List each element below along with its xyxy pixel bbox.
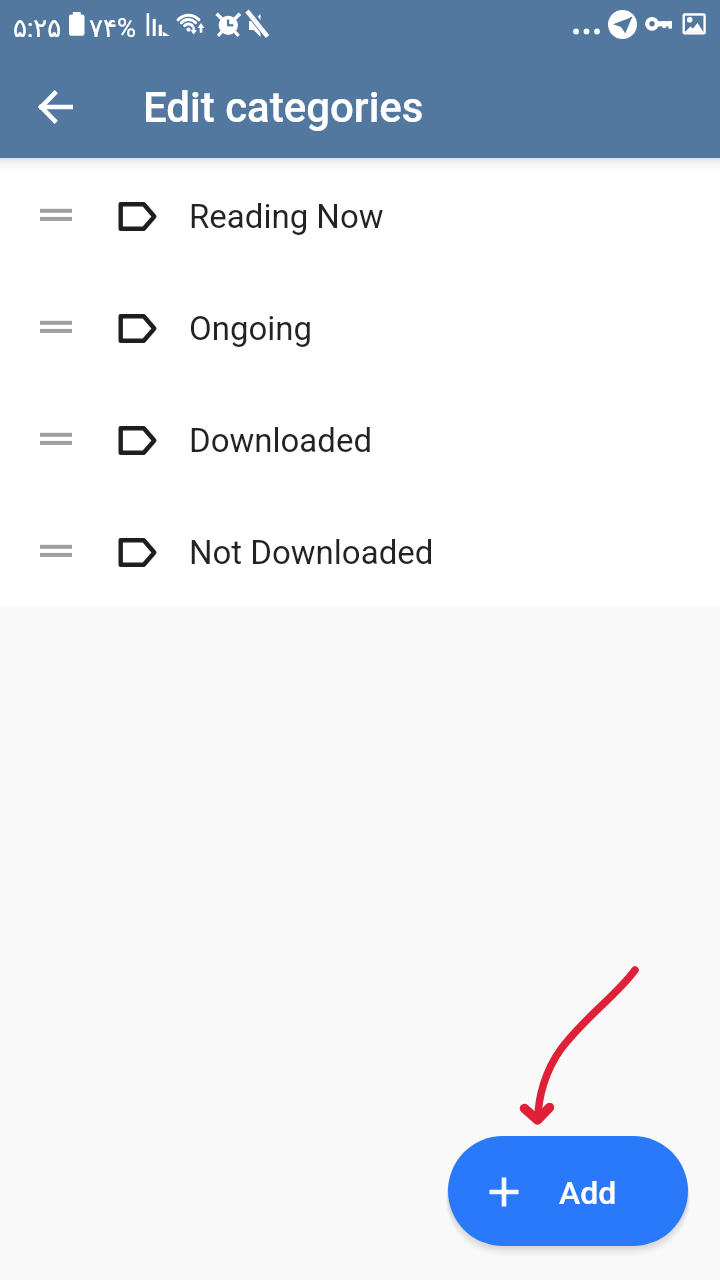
button[interactable]: Ongoing [0,270,720,382]
button[interactable]: Not Downloaded [0,494,720,606]
button[interactable]: Downloaded [0,382,720,494]
staticText: Not Downloaded [189,533,434,572]
staticText: Edit categories [143,83,424,132]
button[interactable]: Reading Now [0,158,720,270]
button[interactable]: Add [448,1136,688,1246]
staticText: Downloaded [189,421,373,460]
staticText: ۷۴% [89,13,136,43]
staticText: Ongoing [189,309,313,348]
button[interactable]: Back [12,63,100,151]
staticText: ۵:۲۵ [13,13,62,43]
staticText: Reading Now [189,197,384,236]
staticText: Add [559,1174,617,1212]
